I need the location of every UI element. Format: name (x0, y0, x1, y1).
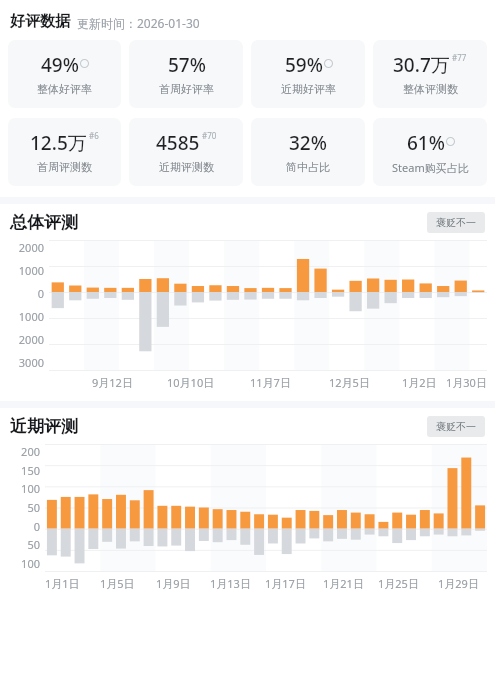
button[interactable]: 4585 (129, 118, 243, 186)
staticText: 首周评测数 (37, 160, 92, 174)
staticText: 1月21日 (323, 576, 364, 591)
staticText: #77 (452, 52, 467, 63)
staticText: 近期评测 (10, 416, 78, 437)
staticText: 200 (21, 444, 40, 459)
staticText: 59% (285, 52, 323, 78)
staticText: 总体评测 (10, 212, 78, 233)
staticText: 更新时间：2026-01-30 (77, 15, 200, 31)
staticText: Steam购买占比 (392, 160, 469, 175)
staticText: 49% (41, 52, 79, 78)
staticText: 4585 (156, 130, 200, 156)
staticText: 50 (27, 500, 40, 515)
staticText: 1月13日 (210, 576, 251, 591)
staticText: 整体好评率 (37, 82, 92, 96)
staticText: 近期评测数 (159, 160, 214, 174)
staticText: 好评数据 (10, 12, 70, 31)
staticText: 1000 (18, 263, 44, 278)
staticText: 1月17日 (265, 576, 306, 591)
staticText: 褒贬不一 (436, 216, 476, 229)
staticText: 1月5日 (100, 576, 135, 591)
staticText: 1月9日 (156, 576, 191, 591)
staticText: 3000 (18, 355, 44, 370)
staticText: 11月7日 (250, 375, 291, 390)
staticText: 1000 (18, 309, 44, 324)
staticText: 100 (21, 481, 40, 496)
staticText: 1月25日 (378, 576, 419, 591)
button[interactable]: 30.7万 (373, 40, 487, 108)
staticText: 9月12日 (92, 375, 133, 390)
staticText: 近期好评率 (281, 82, 336, 96)
staticText: 0 (33, 519, 40, 534)
staticText: 1月1日 (45, 576, 80, 591)
staticText: 1月30日 (446, 375, 487, 390)
staticText: 100 (21, 556, 40, 571)
staticText: 12月5日 (329, 375, 370, 390)
staticText: 1月2日 (402, 375, 437, 390)
staticText: #6 (89, 130, 99, 141)
button[interactable]: 褒贬不一 (427, 416, 485, 437)
staticText: 57% (168, 52, 206, 78)
button[interactable]: 61% (373, 118, 487, 186)
button[interactable]: 32% (251, 118, 365, 186)
staticText: 30.7万 (393, 52, 450, 78)
staticText: 10月10日 (167, 375, 215, 390)
staticText: 2000 (18, 240, 44, 255)
staticText: 61% (407, 130, 445, 156)
staticText: 2000 (18, 332, 44, 347)
staticText: 首周好评率 (159, 82, 214, 96)
button[interactable]: 褒贬不一 (427, 212, 485, 233)
staticText: 0 (37, 286, 44, 301)
staticText: 150 (21, 463, 40, 478)
button[interactable]: 57% (129, 40, 243, 108)
staticText: 整体评测数 (403, 82, 458, 96)
staticText: 1月29日 (438, 576, 479, 591)
staticText: 简中占比 (286, 160, 330, 174)
button[interactable]: 59% (251, 40, 365, 108)
staticText: 32% (289, 130, 327, 156)
staticText: 50 (27, 537, 40, 552)
staticText: 12.5万 (30, 130, 87, 156)
staticText: #70 (202, 130, 217, 141)
button[interactable]: 49% (8, 40, 121, 108)
button[interactable]: 12.5万 (8, 118, 121, 186)
staticText: 褒贬不一 (436, 420, 476, 433)
